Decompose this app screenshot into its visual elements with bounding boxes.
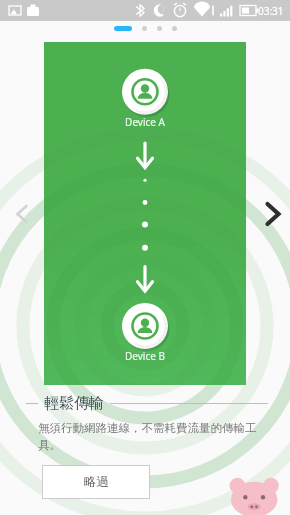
- staticText: 03:31: [258, 4, 284, 18]
- button[interactable]: Previous: [8, 196, 36, 232]
- staticText: 輕鬆傳輸: [44, 394, 104, 413]
- staticText: 略過: [84, 474, 109, 490]
- staticText: Device B: [125, 349, 165, 363]
- staticText: 無須行動網路連線，不需耗費流量的傳輸工具。: [38, 421, 266, 452]
- staticText: Device A: [125, 115, 165, 129]
- button[interactable]: 略過: [42, 465, 150, 499]
- button[interactable]: Next: [258, 192, 288, 236]
